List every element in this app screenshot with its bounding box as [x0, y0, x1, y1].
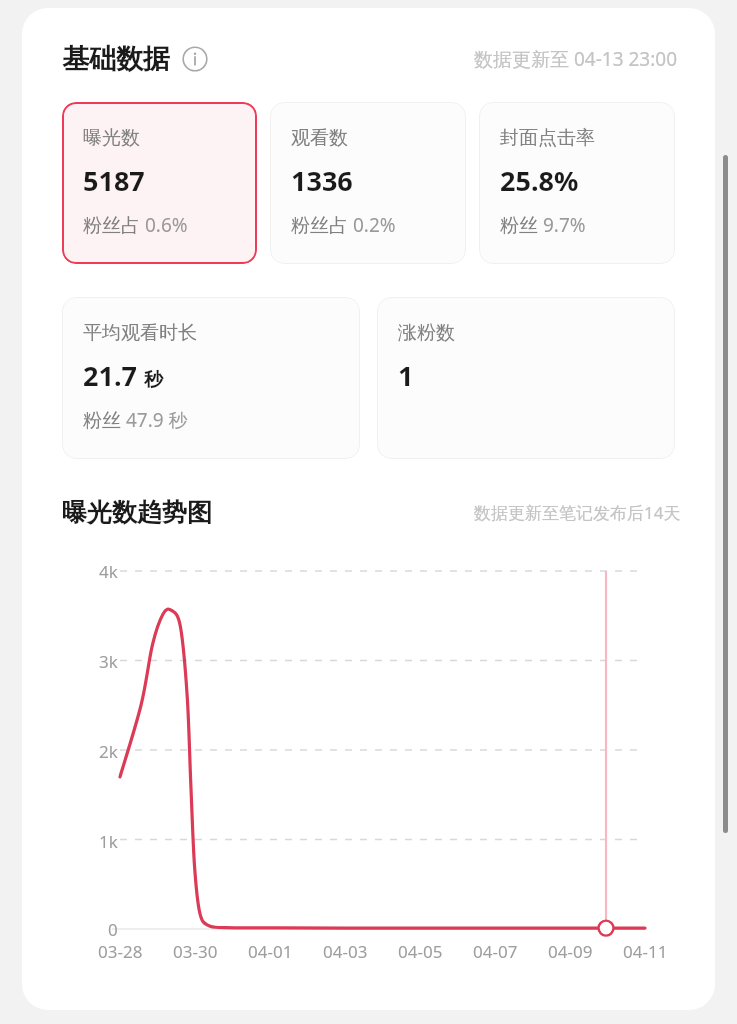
staticText: 25.8% [500, 162, 579, 199]
staticText: 曝光数 [83, 126, 140, 150]
staticText: 04-11 [623, 940, 668, 963]
button[interactable]: 曝光数 [62, 102, 257, 264]
button[interactable]: 涨粉数 [377, 297, 675, 459]
staticText: 基础数据 [62, 42, 170, 76]
staticText: 1 [398, 357, 414, 394]
button[interactable]: 信息说明 [182, 46, 208, 72]
staticText: 粉丝占 0.2% [291, 212, 396, 238]
staticText: 秒 [144, 368, 163, 392]
staticText: 观看数 [291, 126, 348, 150]
staticText: 粉丝占 0.6% [83, 212, 188, 238]
staticText: 03-30 [173, 940, 218, 963]
button[interactable]: 封面点击率 [479, 102, 675, 264]
staticText: 0 [108, 918, 118, 941]
staticText: 封面点击率 [500, 126, 595, 150]
staticText: 2k [99, 740, 118, 763]
staticText: 1336 [291, 162, 353, 199]
staticText: 21.7 [83, 357, 137, 394]
button[interactable]: 平均观看时长 [62, 297, 360, 459]
staticText: 3k [99, 650, 118, 673]
staticText: 04-07 [473, 940, 518, 963]
staticText: 5187 [83, 162, 145, 199]
staticText: 平均观看时长 [83, 321, 197, 345]
staticText: 1k [99, 830, 118, 853]
staticText: 数据更新至笔记发布后14天 [474, 501, 681, 524]
staticText: 04-01 [248, 940, 293, 963]
staticText: 数据更新至 04-13 23:00 [474, 46, 678, 72]
staticText: 04-03 [323, 940, 368, 963]
staticText: 04-09 [548, 940, 593, 963]
staticText: 03-28 [98, 940, 143, 963]
staticText: 粉丝 47.9 秒 [83, 407, 188, 433]
staticText: 涨粉数 [398, 321, 455, 345]
staticText: 04-05 [398, 940, 443, 963]
staticText: 粉丝 9.7% [500, 212, 586, 238]
button[interactable]: 观看数 [270, 102, 466, 264]
staticText: 曝光数趋势图 [62, 497, 212, 528]
staticText: 4k [99, 560, 118, 583]
